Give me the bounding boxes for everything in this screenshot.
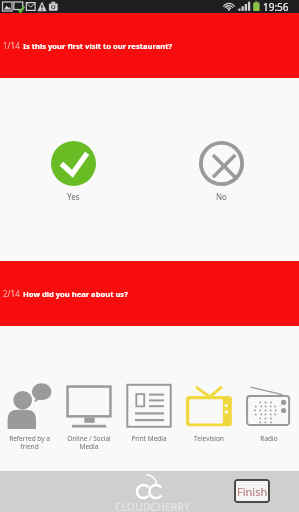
button[interactable]: Yes [51,141,96,202]
staticText: Finish [237,484,268,499]
button[interactable]: Finish [234,479,270,503]
staticText: CLOUDCHERRY [115,500,191,512]
staticText: Radio [260,434,278,443]
staticText: Television [194,434,224,443]
other: Radio [246,383,292,429]
button[interactable]: Radio [239,383,299,443]
staticText: How did you hear about us? [23,289,128,299]
staticText: Is this your first visit to our restaura… [23,41,173,51]
button[interactable]: Television [179,383,239,443]
staticText: Yes [67,191,80,202]
staticText: Print Media [131,434,167,443]
staticText: 1/14 [3,40,20,51]
button[interactable]: Referred by a friend [0,383,59,451]
other: Referred by a friend [7,383,53,429]
staticText: Online / Social Media [67,434,111,451]
button[interactable]: Print Media [119,383,179,443]
staticText: 19:56 [263,0,289,13]
button[interactable]: No [199,141,244,202]
staticText: No [216,191,227,202]
other: Television [186,383,232,429]
other: Print Media [126,383,172,429]
other: Online / Social Media [66,383,112,429]
staticText: 2/14 [3,288,20,299]
button[interactable]: Online / Social Media [59,383,119,451]
staticText: Referred by a friend [9,434,50,451]
